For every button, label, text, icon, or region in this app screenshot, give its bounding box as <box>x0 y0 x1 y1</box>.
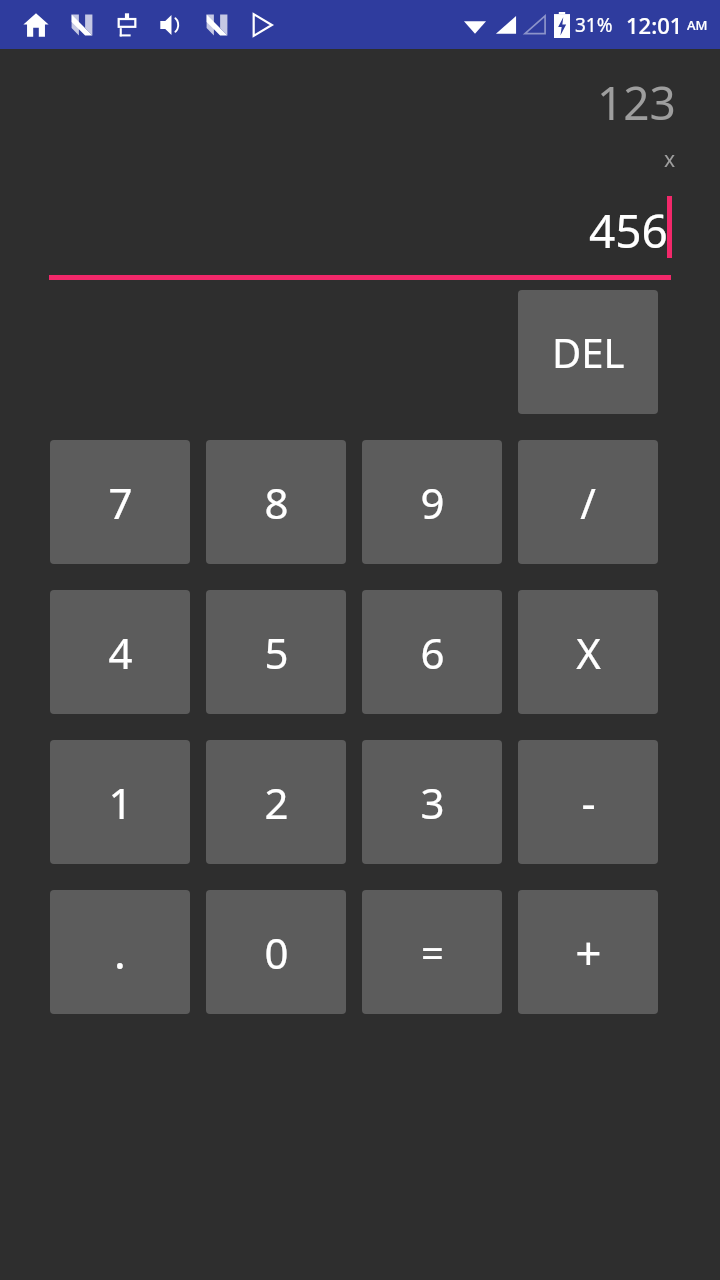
button[interactable]: - <box>518 740 658 864</box>
staticText: = <box>421 925 444 979</box>
button[interactable]: 0 <box>206 890 346 1014</box>
staticText: 4 <box>108 624 133 681</box>
staticText: 12:01 <box>626 10 683 40</box>
staticText: 7 <box>108 474 133 531</box>
staticText: 2 <box>264 774 289 831</box>
button[interactable]: 5 <box>206 590 346 714</box>
button[interactable]: 2 <box>206 740 346 864</box>
staticText: 31% <box>575 12 613 38</box>
staticText: 0 <box>264 924 289 981</box>
button[interactable]: X <box>518 590 658 714</box>
button[interactable]: 8 <box>206 440 346 564</box>
button[interactable]: / <box>518 440 658 564</box>
button[interactable]: 6 <box>362 590 502 714</box>
button[interactable]: 4 <box>50 590 190 714</box>
staticText: DEL <box>552 325 625 379</box>
staticText: 456 <box>589 199 668 262</box>
staticText: + <box>575 921 602 984</box>
staticText: 8 <box>264 474 289 531</box>
staticText: 1 <box>108 774 133 831</box>
staticText: 6 <box>420 624 445 681</box>
staticText: . <box>114 922 126 982</box>
button[interactable]: 1 <box>50 740 190 864</box>
staticText: 9 <box>420 474 445 531</box>
button[interactable]: DEL <box>518 290 658 414</box>
button[interactable]: 9 <box>362 440 502 564</box>
staticText: 3 <box>420 774 445 831</box>
staticText: / <box>580 474 596 531</box>
button[interactable]: 3 <box>362 740 502 864</box>
button[interactable]: + <box>518 890 658 1014</box>
staticText: - <box>581 772 596 832</box>
button[interactable]: . <box>50 890 190 1014</box>
button[interactable]: = <box>362 890 502 1014</box>
staticText: 123 <box>597 71 676 134</box>
staticText: 5 <box>264 624 289 681</box>
staticText: X <box>576 624 601 681</box>
staticText: x <box>664 145 676 174</box>
staticText: AM <box>687 16 708 34</box>
button[interactable]: 7 <box>50 440 190 564</box>
